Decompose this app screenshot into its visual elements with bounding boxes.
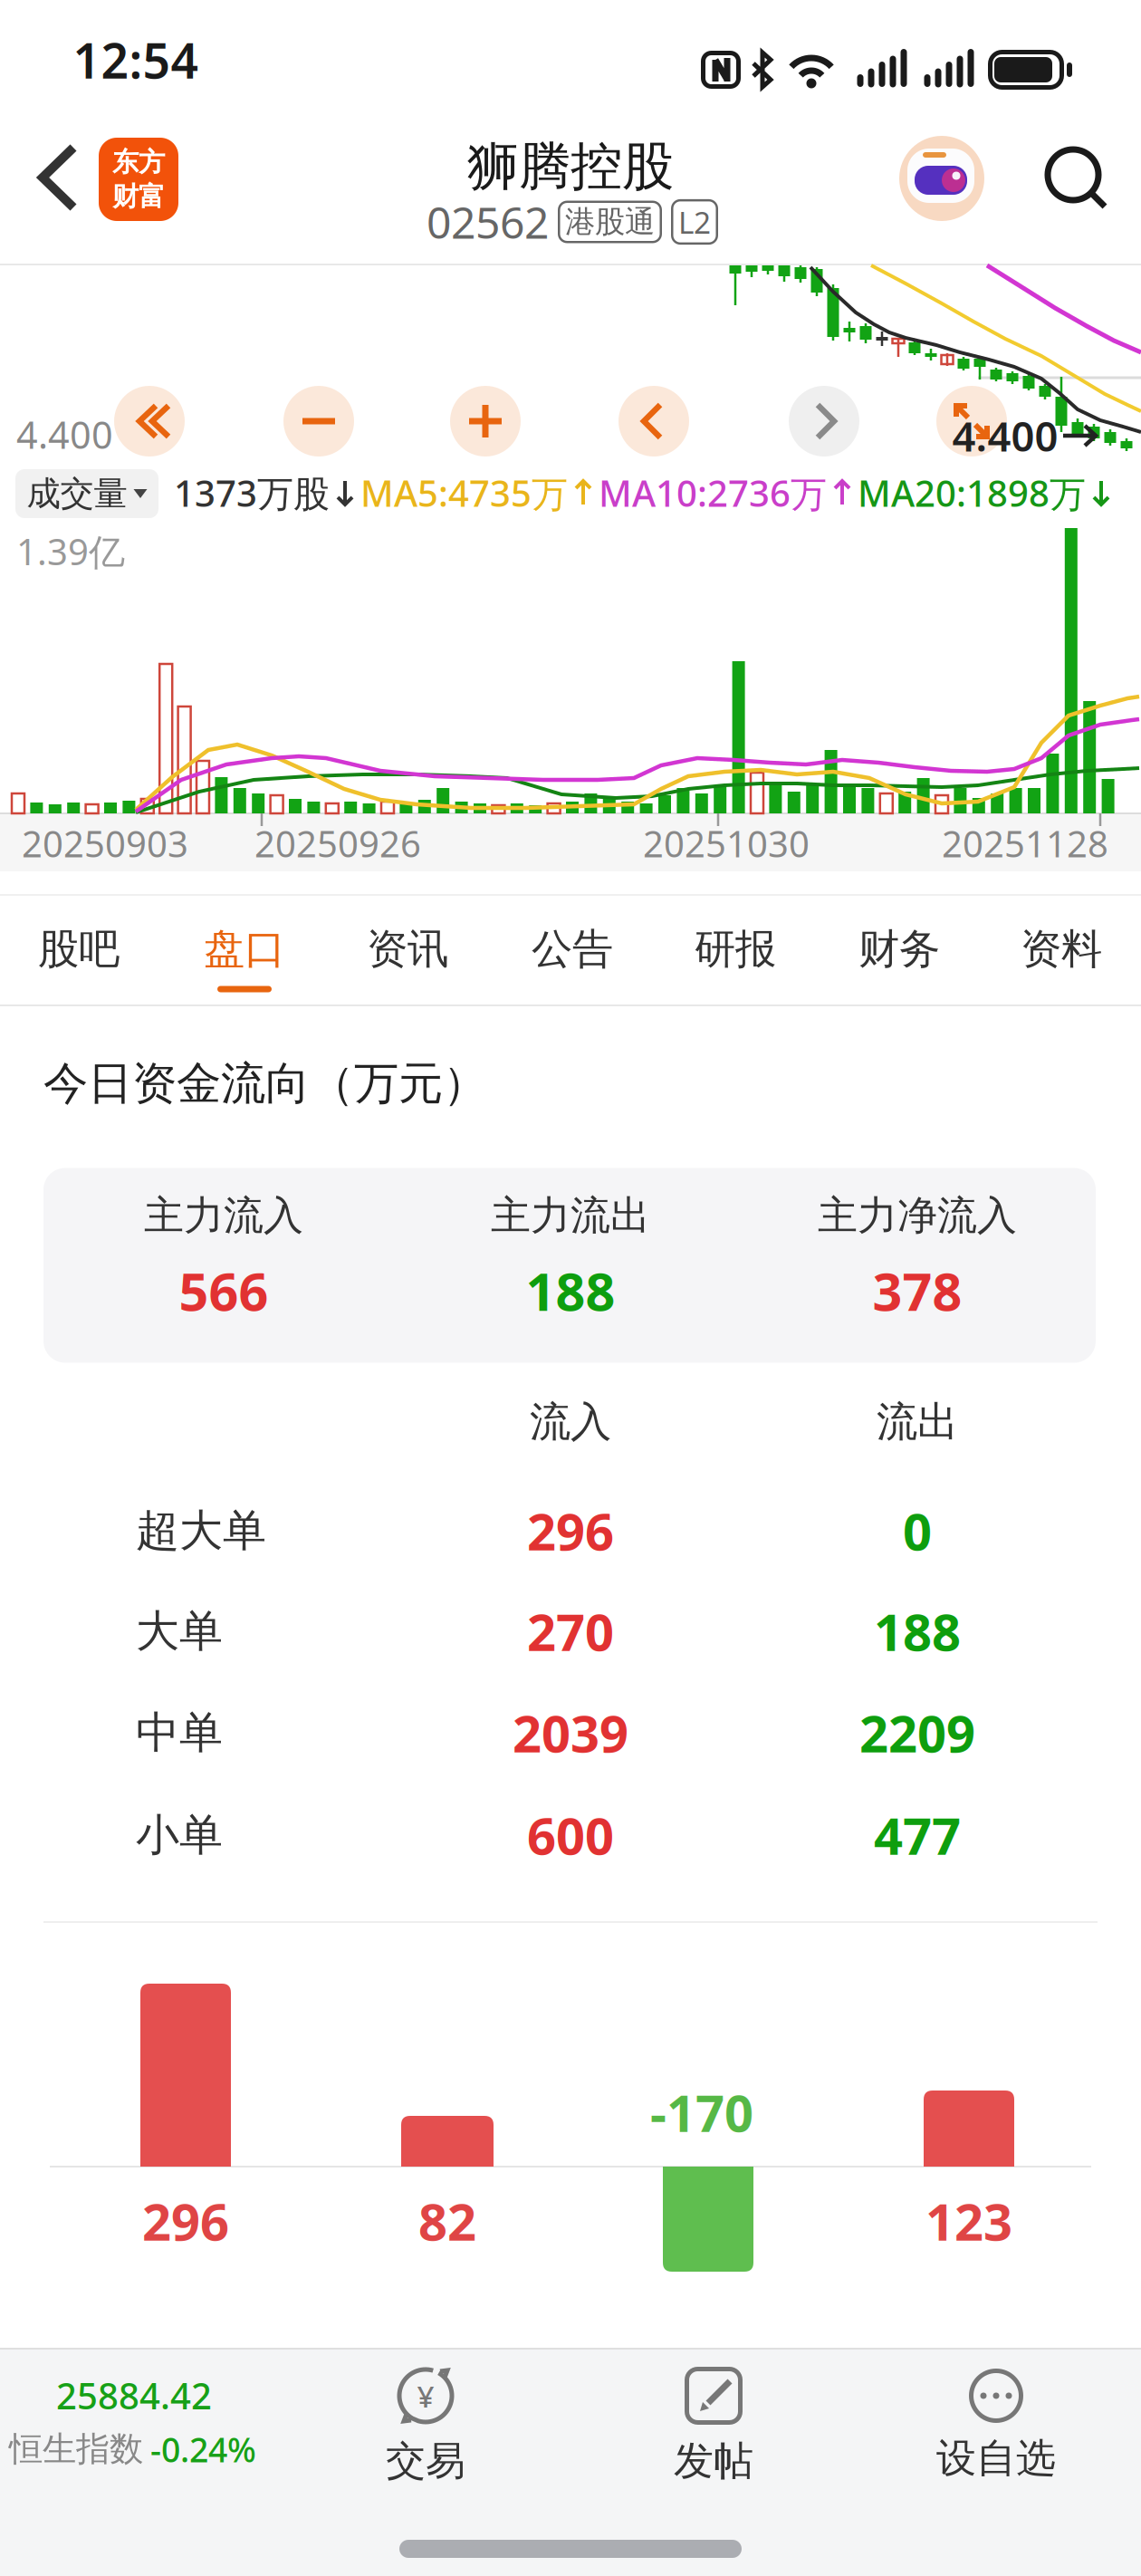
staticText: 20251128 bbox=[942, 819, 1108, 867]
staticText: MA10:2736万 bbox=[599, 469, 827, 517]
button[interactable] bbox=[789, 386, 859, 457]
staticText: 盘口 bbox=[204, 924, 285, 975]
button[interactable]: 盘口 bbox=[186, 904, 303, 995]
staticText: 财富 bbox=[112, 180, 165, 213]
staticText: MA20:1898万 bbox=[858, 469, 1086, 517]
staticText: 成交量 bbox=[27, 473, 127, 514]
button[interactable] bbox=[899, 136, 984, 221]
staticText: 研报 bbox=[695, 924, 776, 975]
staticText: 477 bbox=[874, 1801, 961, 1869]
staticText: 资讯 bbox=[367, 924, 448, 975]
button[interactable]: 25884.42 bbox=[9, 2371, 256, 2472]
staticText: 188 bbox=[526, 1256, 615, 1325]
staticText: 188 bbox=[874, 1598, 961, 1665]
button[interactable]: 股吧 bbox=[20, 904, 138, 995]
staticText: 82 bbox=[418, 2187, 476, 2255]
staticText: 中单 bbox=[136, 1706, 223, 1759]
staticText: 狮腾控股 bbox=[467, 135, 674, 199]
staticText: 20250903 bbox=[22, 819, 188, 867]
staticText: 流出 bbox=[877, 1397, 958, 1447]
staticText: 公告 bbox=[532, 924, 613, 975]
button[interactable]: 东方 bbox=[99, 138, 178, 221]
staticText: 设自选 bbox=[936, 2434, 1056, 2483]
button[interactable] bbox=[936, 386, 1007, 457]
staticText: 资料 bbox=[1021, 924, 1102, 975]
button[interactable]: 成交量 bbox=[15, 469, 158, 518]
staticText: 1373万股 bbox=[174, 469, 330, 517]
button[interactable]: 研报 bbox=[676, 904, 794, 995]
staticText: 港股通 bbox=[565, 203, 655, 240]
button[interactable] bbox=[1043, 145, 1108, 210]
button[interactable]: 设自选 bbox=[936, 2369, 1056, 2483]
staticText: 296 bbox=[142, 2187, 229, 2255]
staticText: MA5:4735万 bbox=[360, 469, 568, 517]
staticText: -0.24% bbox=[150, 2427, 256, 2472]
button[interactable]: 公告 bbox=[513, 904, 631, 995]
staticText: 4.400 bbox=[952, 408, 1058, 463]
button[interactable] bbox=[114, 386, 185, 457]
staticText: 流入 bbox=[530, 1397, 611, 1447]
staticText: 270 bbox=[527, 1598, 614, 1665]
staticText: 恒生指数 bbox=[9, 2428, 143, 2470]
staticText: ¥ bbox=[417, 2376, 434, 2416]
button[interactable] bbox=[450, 386, 521, 457]
button[interactable] bbox=[618, 386, 689, 457]
button[interactable] bbox=[283, 386, 354, 457]
button[interactable]: 资料 bbox=[1002, 904, 1120, 995]
button[interactable] bbox=[30, 137, 86, 218]
staticText: 566 bbox=[179, 1256, 268, 1325]
staticText: 财务 bbox=[858, 924, 940, 975]
staticText: 交易 bbox=[386, 2437, 465, 2485]
staticText: 大单 bbox=[136, 1605, 223, 1658]
button[interactable]: 财务 bbox=[840, 904, 958, 995]
staticText: 02562 bbox=[427, 193, 549, 251]
button[interactable]: 发帖 bbox=[674, 2366, 753, 2485]
staticText: 378 bbox=[873, 1256, 962, 1325]
staticText: 股吧 bbox=[38, 924, 120, 975]
staticText: 25884.42 bbox=[56, 2371, 212, 2419]
staticText: 2209 bbox=[859, 1699, 975, 1766]
button[interactable]: 资讯 bbox=[349, 904, 466, 995]
button[interactable]: ¥ bbox=[386, 2366, 465, 2485]
staticText: 主力净流入 bbox=[818, 1191, 1017, 1240]
staticText: 今日资金流向（万元） bbox=[43, 1056, 487, 1111]
staticText: 小单 bbox=[136, 1808, 223, 1862]
staticText: 2039 bbox=[513, 1699, 628, 1766]
staticText: 600 bbox=[527, 1801, 614, 1869]
staticText: 123 bbox=[925, 2187, 1012, 2255]
staticText: L2 bbox=[678, 202, 711, 242]
staticText: 0 bbox=[903, 1497, 932, 1564]
staticText: 东方 bbox=[112, 146, 165, 178]
staticText: 20251030 bbox=[643, 819, 810, 867]
staticText: 4.400 bbox=[16, 409, 113, 459]
staticText: 主力流入 bbox=[144, 1191, 303, 1240]
staticText: -170 bbox=[650, 2079, 753, 2146]
staticText: 20250926 bbox=[254, 819, 421, 867]
staticText: 1.39亿 bbox=[16, 527, 125, 575]
staticText: 发帖 bbox=[674, 2437, 753, 2485]
staticText: 296 bbox=[527, 1497, 614, 1564]
staticText: 主力流出 bbox=[491, 1191, 650, 1240]
staticText: 超大单 bbox=[136, 1504, 266, 1557]
staticText: 12:54 bbox=[73, 28, 199, 92]
